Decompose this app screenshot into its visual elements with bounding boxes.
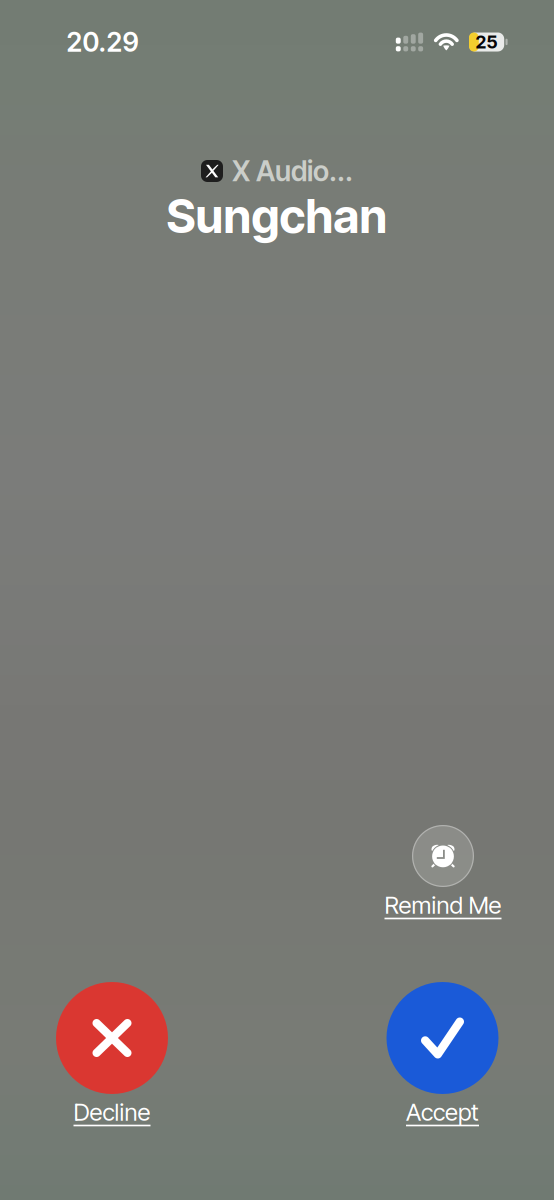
staticText: X Audio... xyxy=(232,154,353,188)
button[interactable]: Accept xyxy=(332,982,552,1134)
staticText: Sungchan xyxy=(166,188,387,244)
staticText: Remind Me xyxy=(384,890,501,919)
staticText: 25 xyxy=(476,31,498,53)
staticText: Accept xyxy=(406,1097,479,1126)
button[interactable]: Remind Me xyxy=(333,825,553,925)
staticText: Decline xyxy=(73,1097,150,1126)
button[interactable]: Decline xyxy=(2,982,222,1134)
staticText: 20.29 xyxy=(66,26,138,58)
